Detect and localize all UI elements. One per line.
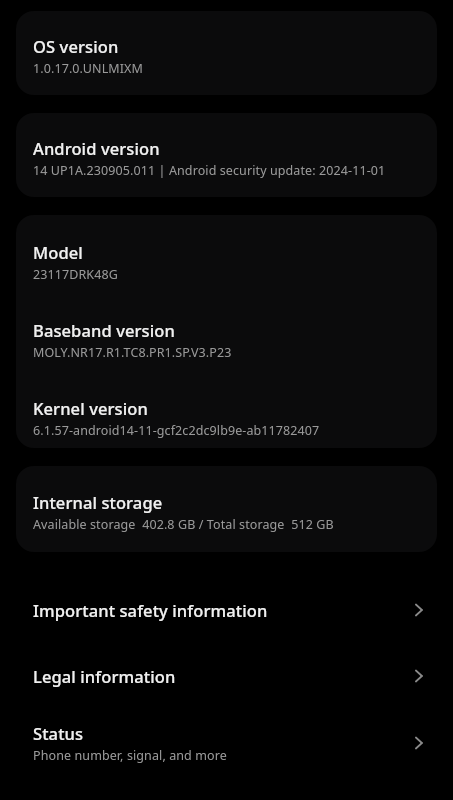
staticText: Status (33, 722, 84, 744)
other: Important safety information (409, 599, 431, 621)
staticText: Internal storage (33, 491, 163, 513)
other: Status (409, 732, 431, 754)
staticText: Model (33, 241, 83, 263)
button[interactable]: Status (0, 712, 453, 774)
staticText: 23117DRK48G (33, 266, 118, 283)
staticText: Phone number, signal, and more (33, 747, 227, 764)
staticText: MOLY.NR17.R1.TC8.PR1.SP.V3.P23 (33, 344, 232, 361)
staticText: Legal information (33, 665, 176, 687)
staticText: Baseband version (33, 319, 175, 341)
staticText: Available storage 402.8 GB / Total stora… (33, 516, 334, 533)
staticText: Kernel version (33, 397, 148, 419)
other: Legal information (409, 665, 431, 687)
button[interactable]: Android version (16, 113, 437, 197)
button[interactable]: Model (16, 215, 437, 448)
staticText: Android version (33, 137, 160, 159)
button[interactable]: Internal storage (16, 466, 437, 552)
staticText: 6.1.57-android14-11-gcf2c2dc9lb9e-ab1178… (33, 422, 320, 439)
staticText: 1.0.17.0.UNLMIXM (33, 60, 143, 77)
button[interactable]: Important safety information (0, 582, 453, 638)
button[interactable]: OS version (16, 11, 437, 95)
staticText: 14 UP1A.230905.011 | Android security up… (33, 162, 386, 179)
staticText: OS version (33, 35, 119, 57)
staticText: Important safety information (33, 599, 268, 621)
button[interactable]: Legal information (0, 648, 453, 704)
